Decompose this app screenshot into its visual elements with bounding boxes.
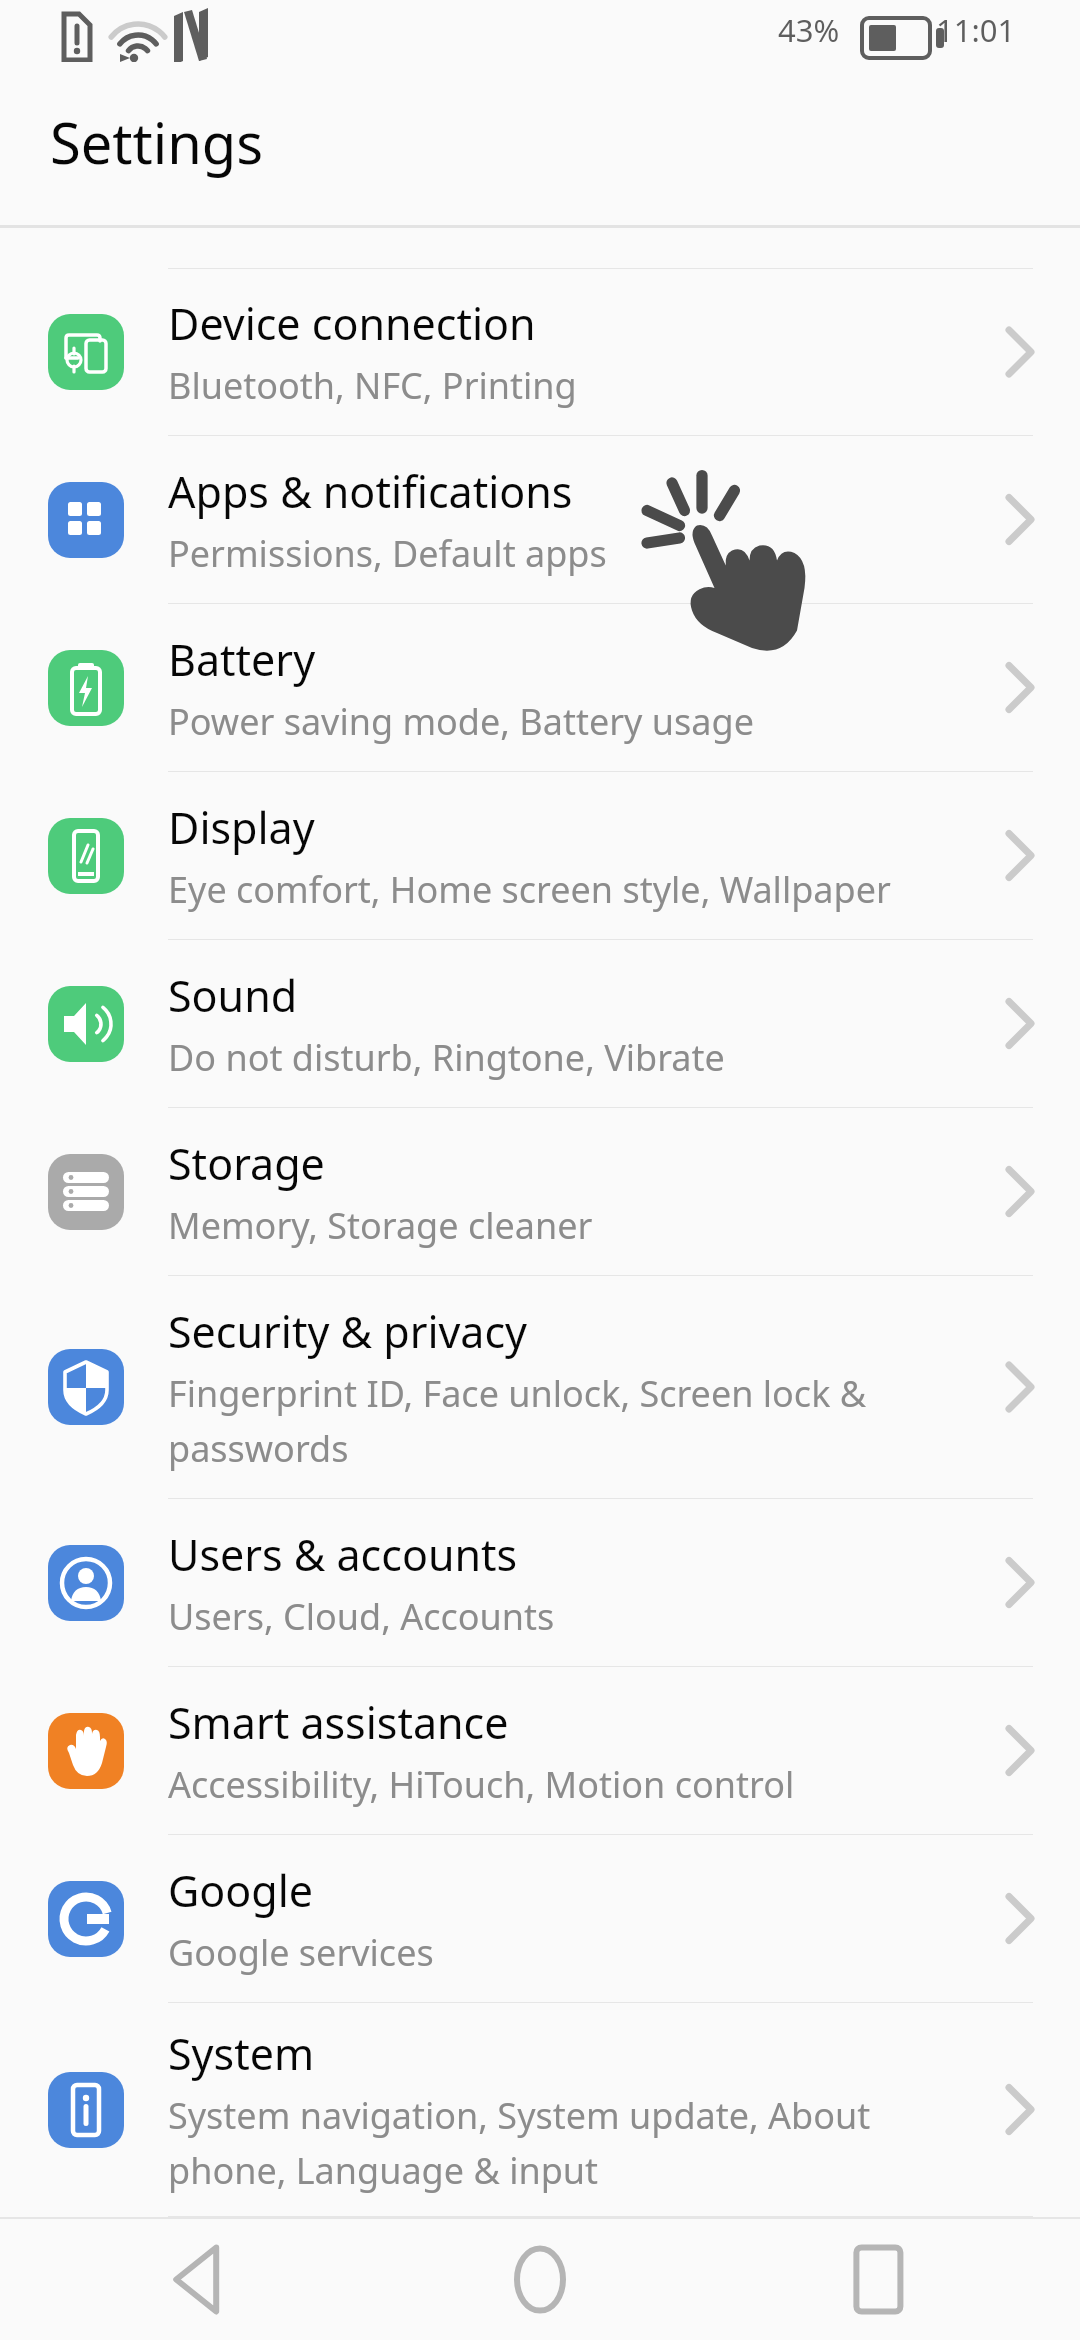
button[interactable]: Back: [0, 2219, 360, 2340]
button[interactable]: Display: [0, 772, 1080, 940]
staticText: Users, Cloud, Accounts: [168, 1592, 555, 1641]
staticText: Security & privacy: [168, 1302, 528, 1361]
staticText: System: [168, 2024, 315, 2083]
staticText: Permissions, Default apps: [168, 529, 607, 578]
staticText: Device connection: [168, 294, 536, 353]
staticText: 43%: [778, 9, 840, 51]
staticText: 11:01: [936, 9, 1016, 51]
staticText: Storage: [168, 1134, 325, 1193]
staticText: Battery: [168, 630, 316, 689]
button[interactable]: Security & privacy: [0, 1276, 1080, 1499]
staticText: Users & accounts: [168, 1525, 518, 1584]
staticText: Apps & notifications: [168, 462, 573, 521]
staticText: Settings: [50, 104, 264, 180]
button[interactable]: Sound: [0, 940, 1080, 1108]
staticText: System navigation, System update, About …: [168, 2091, 966, 2195]
staticText: Bluetooth, NFC, Printing: [168, 361, 577, 410]
button[interactable]: Smart assistance: [0, 1667, 1080, 1835]
button[interactable]: Google: [0, 1835, 1080, 2003]
button[interactable]: Home: [360, 2219, 720, 2340]
button[interactable]: Battery: [0, 604, 1080, 772]
button[interactable]: Users & accounts: [0, 1499, 1080, 1667]
button[interactable]: Apps & notifications: [0, 436, 1080, 604]
staticText: Memory, Storage cleaner: [168, 1201, 593, 1250]
staticText: Sound: [168, 966, 298, 1025]
staticText: Power saving mode, Battery usage: [168, 697, 754, 746]
button[interactable]: Recent apps: [720, 2219, 1080, 2340]
staticText: Google services: [168, 1928, 434, 1977]
staticText: Display: [168, 798, 315, 857]
staticText: Eye comfort, Home screen style, Wallpape…: [168, 865, 891, 914]
button[interactable]: Storage: [0, 1108, 1080, 1276]
staticText: Accessibility, HiTouch, Motion control: [168, 1760, 795, 1809]
staticText: Do not disturb, Ringtone, Vibrate: [168, 1033, 725, 1082]
button[interactable]: System: [0, 2003, 1080, 2217]
staticText: Fingerprint ID, Face unlock, Screen lock…: [168, 1369, 966, 1473]
staticText: Smart assistance: [168, 1693, 509, 1752]
button[interactable]: Device connection: [0, 269, 1080, 436]
staticText: Google: [168, 1861, 314, 1920]
